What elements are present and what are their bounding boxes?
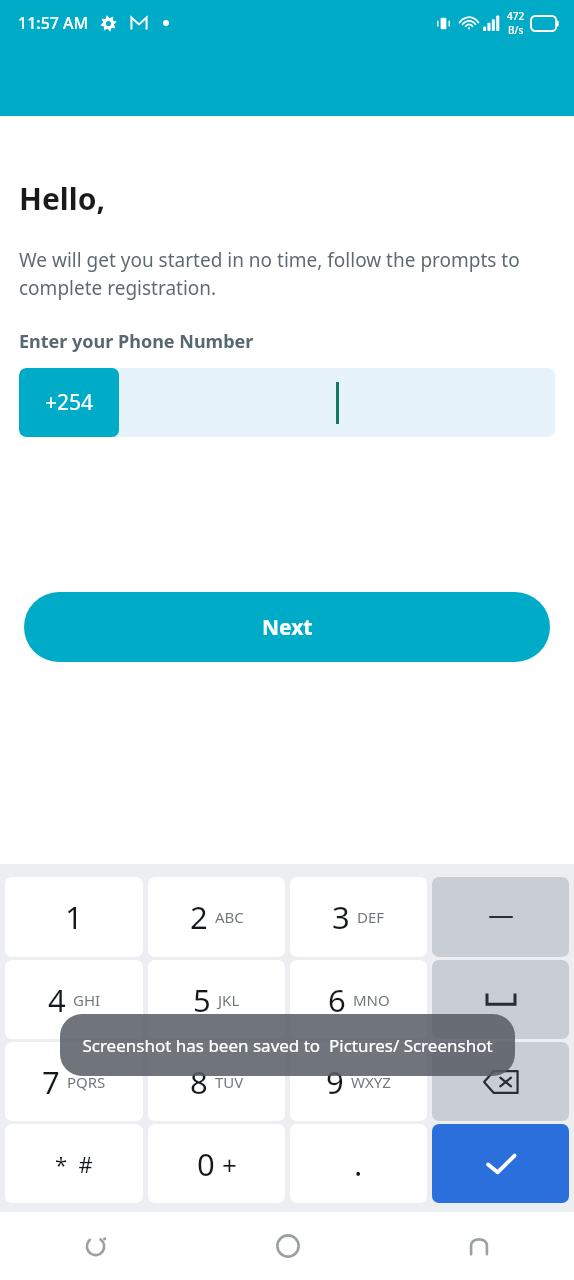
- button[interactable]: 5: [148, 960, 285, 1039]
- staticText: ABC: [215, 907, 244, 927]
- staticText: .: [354, 1143, 363, 1185]
- button[interactable]: 9: [290, 1042, 427, 1121]
- staticText: TUV: [215, 1072, 244, 1092]
- button[interactable]: Home: [192, 1212, 383, 1280]
- staticText: MNO: [353, 990, 390, 1010]
- staticText: 11:57 AM: [18, 12, 89, 34]
- button[interactable]: 3: [290, 877, 427, 957]
- button[interactable]: Done: [432, 1124, 569, 1203]
- staticText: 2: [190, 896, 208, 938]
- staticText: 4: [48, 979, 66, 1021]
- button[interactable]: Next: [24, 592, 550, 662]
- button[interactable]: 6: [290, 960, 427, 1039]
- staticText: Next: [262, 613, 313, 642]
- button[interactable]: Space: [432, 960, 569, 1039]
- staticText: 5: [193, 979, 211, 1021]
- staticText: PQRS: [67, 1072, 106, 1092]
- staticText: 3: [332, 896, 350, 938]
- button[interactable]: 2: [148, 877, 285, 957]
- staticText: B/s: [508, 23, 524, 37]
- button[interactable]: 4: [5, 960, 143, 1039]
- button[interactable]: Minus: [432, 877, 569, 957]
- button[interactable]: 7: [5, 1042, 143, 1121]
- staticText: +: [222, 1147, 237, 1182]
- button[interactable]: Recents: [383, 1212, 574, 1280]
- staticText: 8: [190, 1061, 208, 1103]
- button[interactable]: +254: [19, 368, 119, 437]
- staticText: DEF: [357, 907, 385, 927]
- staticText: 6: [328, 979, 346, 1021]
- staticText: Hello,: [19, 178, 106, 219]
- staticText: 1: [65, 896, 83, 938]
- button[interactable]: 0: [148, 1124, 285, 1203]
- staticText: We will get you started in no time, foll…: [19, 247, 555, 301]
- staticText: 7: [42, 1061, 60, 1103]
- staticText: JKL: [218, 990, 240, 1010]
- staticText: +254: [45, 388, 94, 417]
- button[interactable]: Back: [0, 1212, 192, 1280]
- staticText: 9: [326, 1061, 344, 1103]
- staticText: WXYZ: [351, 1072, 391, 1092]
- staticText: * #: [55, 1149, 93, 1179]
- staticText: 472: [507, 9, 525, 23]
- staticText: 0: [197, 1143, 215, 1185]
- button[interactable]: 1: [5, 877, 143, 957]
- staticText: Screenshot has been saved to Pictures/ S…: [82, 1034, 493, 1057]
- button[interactable]: .: [290, 1124, 427, 1203]
- staticText: Enter your Phone Number: [19, 329, 254, 354]
- button[interactable]: * #: [5, 1124, 143, 1203]
- button[interactable]: Backspace: [432, 1042, 569, 1121]
- button[interactable]: +254: [19, 368, 555, 437]
- button[interactable]: 8: [148, 1042, 285, 1121]
- staticText: GHI: [73, 990, 101, 1010]
